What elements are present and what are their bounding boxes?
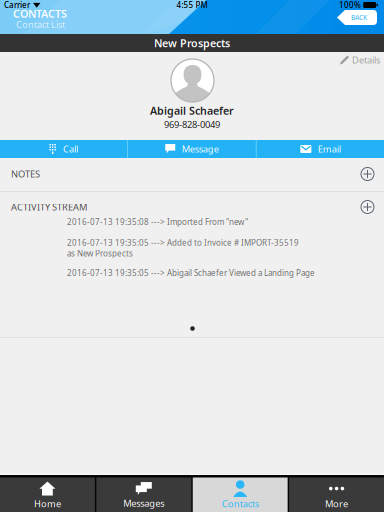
staticText: Messages [123,497,164,509]
staticText: 4:55 PM [176,0,207,10]
button[interactable]: Home [0,477,95,512]
staticText: 969-828-0049 [164,118,220,131]
staticText: Message [182,143,219,155]
staticText: 2016-07-13 19:35:08 ---> Imported From "… [67,217,248,227]
staticText: More [325,498,348,510]
staticText: Home [34,498,61,510]
staticText: ACTIVITY STREAM [11,201,87,213]
button[interactable]: Call [0,140,127,158]
button[interactable]: BACK [337,10,377,25]
staticText: BACK [351,13,367,22]
staticText: Contact List [16,18,65,31]
staticText: 100% [339,0,361,10]
staticText: NOTES [11,168,40,180]
staticText: Carrier [4,0,30,10]
button[interactable]: Messages [96,477,191,512]
staticText: CONTACTS [13,6,67,21]
staticText: New Prospects [154,36,230,50]
staticText: Email [318,143,341,155]
button[interactable]: Add ACTIVITY STREAM [361,200,374,213]
staticText: Abigail Schaefer [150,103,234,118]
staticText: 2016-07-13 19:35:05 ---> Abigail Schaefe… [67,268,315,278]
button[interactable]: Add NOTES [361,167,374,180]
button[interactable]: Email [257,140,384,158]
button[interactable]: Message [128,140,256,158]
staticText: Details [352,54,380,66]
button[interactable]: More [289,477,384,512]
button[interactable]: Contacts [193,477,288,512]
staticText: Contacts [222,498,259,510]
staticText: Call [63,143,78,155]
staticText: 2016-07-13 19:35:05 ---> Added to Invoic… [67,237,299,259]
button[interactable]: Details [322,54,380,66]
